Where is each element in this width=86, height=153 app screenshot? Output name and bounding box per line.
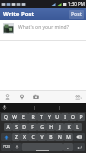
- button[interactable]: Shift: [1, 133, 12, 141]
- button[interactable]: A: [4, 123, 12, 131]
- button[interactable]: [9, 103, 35, 112]
- button[interactable]: Symbols: [1, 143, 12, 151]
- button[interactable]: N: [55, 133, 64, 141]
- staticText: X: [23, 134, 26, 141]
- button[interactable]: S: [12, 123, 20, 131]
- button[interactable]: Voice typing: [12, 143, 22, 151]
- button[interactable]: J: [55, 123, 64, 131]
- button[interactable]: Post: [69, 10, 84, 19]
- button[interactable]: Add location: [17, 92, 27, 102]
- button[interactable]: W: [10, 113, 19, 121]
- button[interactable]: O: [69, 113, 77, 121]
- staticText: C: [31, 134, 35, 141]
- staticText: U: [55, 114, 59, 121]
- button[interactable]: Space: [22, 143, 63, 151]
- button[interactable]: C: [28, 133, 37, 141]
- button[interactable]: B: [46, 133, 55, 141]
- button[interactable]: Enter: [73, 143, 85, 151]
- button[interactable]: I: [61, 113, 69, 121]
- button[interactable]: Privacy audience: [72, 91, 84, 103]
- button[interactable]: F: [28, 123, 37, 131]
- button[interactable]: Add photo: [31, 92, 41, 102]
- button[interactable]: M: [64, 133, 73, 141]
- staticText: R: [31, 114, 35, 121]
- staticText: Z: [15, 134, 18, 141]
- button[interactable]: Tag people: [3, 92, 13, 102]
- staticText: W: [12, 114, 17, 121]
- button[interactable]: X: [20, 133, 28, 141]
- staticText: D: [22, 124, 26, 131]
- button[interactable]: Y: [45, 113, 53, 121]
- button[interactable]: D: [20, 123, 28, 131]
- staticText: .: [67, 144, 69, 151]
- staticText: ?123: [3, 145, 10, 149]
- button[interactable]: U: [53, 113, 61, 121]
- button[interactable]: Backspace: [73, 133, 85, 141]
- button[interactable]: Q: [1, 113, 10, 121]
- button[interactable]: Voice input: [1, 104, 8, 111]
- button[interactable]: .: [63, 143, 73, 151]
- staticText: J: [59, 124, 61, 131]
- staticText: Write Post: [3, 10, 35, 18]
- button[interactable]: [35, 103, 60, 112]
- staticText: O: [71, 114, 75, 121]
- staticText: I: [64, 114, 66, 121]
- button[interactable]: T: [37, 113, 45, 121]
- staticText: 1:30 PM: [68, 1, 85, 7]
- button[interactable]: R: [28, 113, 37, 121]
- staticText: K: [67, 124, 71, 131]
- button[interactable]: Z: [12, 133, 20, 141]
- staticText: Post: [71, 11, 82, 18]
- staticText: P: [79, 114, 83, 121]
- staticText: Y: [48, 114, 51, 121]
- staticText: S: [15, 124, 18, 131]
- button[interactable]: L: [73, 123, 82, 131]
- staticText: E: [22, 114, 25, 121]
- staticText: H: [49, 124, 53, 131]
- staticText: N: [58, 134, 62, 141]
- staticText: F: [31, 124, 34, 131]
- button[interactable]: G: [37, 123, 46, 131]
- button[interactable]: H: [46, 123, 55, 131]
- staticText: G: [40, 124, 44, 131]
- button[interactable]: E: [19, 113, 28, 121]
- staticText: M: [66, 134, 71, 141]
- staticText: L: [76, 124, 79, 131]
- staticText: B: [49, 134, 53, 141]
- staticText: V: [40, 134, 44, 141]
- staticText: A: [6, 124, 10, 131]
- staticText: T: [40, 114, 43, 121]
- button[interactable]: V: [37, 133, 46, 141]
- staticText: What's on your mind?: [18, 24, 69, 31]
- staticText: Q: [4, 114, 8, 121]
- button[interactable]: K: [64, 123, 73, 131]
- button[interactable]: P: [77, 113, 85, 121]
